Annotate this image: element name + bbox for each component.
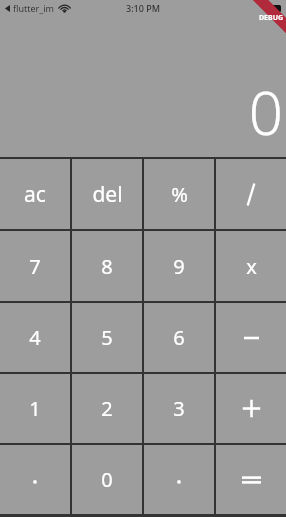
staticText: 7 <box>29 253 41 280</box>
staticText: 3:10 PM <box>126 2 160 14</box>
staticText: 0 <box>101 466 113 493</box>
staticText: 0 <box>248 71 283 153</box>
staticText: 4 <box>29 324 41 351</box>
button[interactable]: Decimal point <box>144 445 214 514</box>
staticText: % <box>171 181 188 208</box>
button[interactable]: ac <box>0 159 70 229</box>
staticText: del <box>92 180 123 209</box>
button[interactable]: 6 <box>144 303 214 372</box>
button[interactable]: 7 <box>0 231 70 301</box>
button[interactable]: x <box>216 231 286 301</box>
button[interactable]: Decimal point <box>0 445 70 514</box>
button[interactable]: 4 <box>0 303 70 372</box>
button[interactable]: 9 <box>144 231 214 301</box>
button[interactable]: Divide <box>216 159 286 229</box>
staticText: DEBUG <box>259 13 284 23</box>
button[interactable]: Minus <box>216 303 286 372</box>
staticText: 5 <box>101 324 113 351</box>
button[interactable]: Equals <box>216 445 286 514</box>
button[interactable]: 3 <box>144 374 214 443</box>
staticText: x <box>246 253 257 280</box>
staticText: ac <box>24 180 46 209</box>
button[interactable]: 8 <box>72 231 142 301</box>
button[interactable]: del <box>72 159 142 229</box>
button[interactable]: 5 <box>72 303 142 372</box>
staticText: 1 <box>29 395 41 422</box>
staticText: 2 <box>101 395 113 422</box>
staticText: 6 <box>173 324 185 351</box>
button[interactable]: 2 <box>72 374 142 443</box>
button[interactable]: % <box>144 159 214 229</box>
button[interactable]: 0 <box>72 445 142 514</box>
staticText: 3 <box>173 395 185 422</box>
staticText: flutter_im <box>13 2 55 14</box>
staticText: 8 <box>101 253 113 280</box>
staticText: 9 <box>173 253 185 280</box>
button[interactable]: Plus <box>216 374 286 443</box>
button[interactable]: 1 <box>0 374 70 443</box>
